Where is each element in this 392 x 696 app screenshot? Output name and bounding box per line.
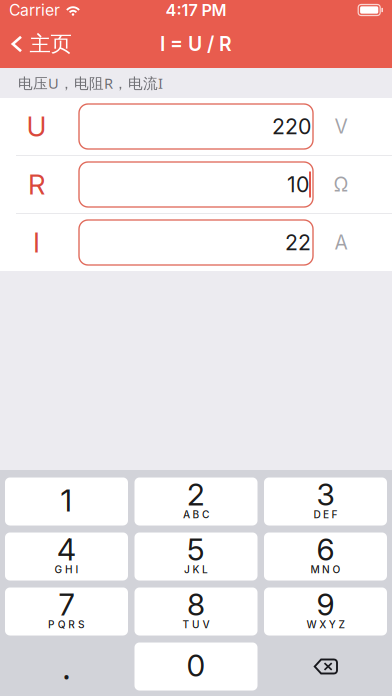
- staticText: P: [48, 618, 55, 631]
- staticText: U: [192, 618, 200, 631]
- staticText: Z: [338, 618, 344, 631]
- button[interactable]: 9: [264, 587, 387, 635]
- staticText: U: [26, 110, 46, 143]
- button[interactable]: Delete: [264, 642, 387, 690]
- staticText: 5: [187, 531, 205, 568]
- staticText: G: [54, 563, 62, 576]
- staticText: I = U / R: [160, 32, 232, 56]
- staticText: 10: [287, 172, 309, 197]
- button[interactable]: 1: [5, 477, 128, 525]
- staticText: Q: [58, 618, 66, 631]
- button[interactable]: .: [5, 642, 128, 690]
- staticText: B: [192, 508, 199, 521]
- button[interactable]: 主页: [0, 24, 79, 64]
- staticText: 2: [187, 476, 205, 513]
- staticText: M: [310, 563, 319, 576]
- staticText: V: [203, 618, 210, 631]
- staticText: C: [202, 508, 209, 521]
- staticText: R: [28, 168, 45, 201]
- staticText: O: [333, 563, 341, 576]
- staticText: R: [68, 618, 75, 631]
- staticText: A: [183, 508, 190, 521]
- staticText: K: [192, 563, 199, 576]
- staticText: 4: [57, 531, 76, 568]
- staticText: 7: [58, 586, 74, 623]
- staticText: 22: [285, 230, 311, 255]
- staticText: Carrier: [9, 0, 60, 19]
- staticText: Y: [329, 618, 336, 631]
- staticText: F: [332, 508, 338, 521]
- staticText: 3: [316, 476, 334, 513]
- staticText: X: [319, 618, 326, 631]
- staticText: D: [313, 508, 320, 521]
- button[interactable]: 7: [5, 587, 128, 635]
- staticText: 0: [186, 647, 205, 684]
- staticText: T: [182, 618, 189, 631]
- staticText: 9: [316, 586, 334, 623]
- staticText: .: [62, 644, 71, 689]
- staticText: A: [334, 231, 347, 254]
- button[interactable]: 5: [134, 532, 257, 580]
- staticText: H: [65, 563, 73, 576]
- staticText: 4:17 PM: [165, 0, 226, 20]
- staticText: 220: [272, 114, 311, 139]
- staticText: 6: [316, 531, 334, 568]
- staticText: S: [78, 618, 85, 631]
- staticText: I: [33, 226, 40, 259]
- button[interactable]: 3: [264, 477, 387, 525]
- staticText: N: [322, 563, 330, 576]
- button[interactable]: 0: [134, 642, 257, 690]
- staticText: 1: [60, 482, 72, 519]
- staticText: I: [76, 563, 79, 576]
- staticText: J: [184, 563, 190, 576]
- staticText: 8: [187, 586, 205, 623]
- button[interactable]: 6: [264, 532, 387, 580]
- staticText: Ω: [333, 173, 348, 196]
- staticText: E: [323, 508, 329, 521]
- button[interactable]: 4: [5, 532, 128, 580]
- staticText: L: [202, 563, 208, 576]
- button[interactable]: 8: [134, 587, 257, 635]
- staticText: 电压U，电阻R，电流I: [18, 73, 163, 93]
- button[interactable]: 2: [134, 477, 257, 525]
- staticText: 主页: [29, 31, 71, 57]
- staticText: W: [307, 618, 317, 631]
- staticText: V: [334, 115, 347, 138]
